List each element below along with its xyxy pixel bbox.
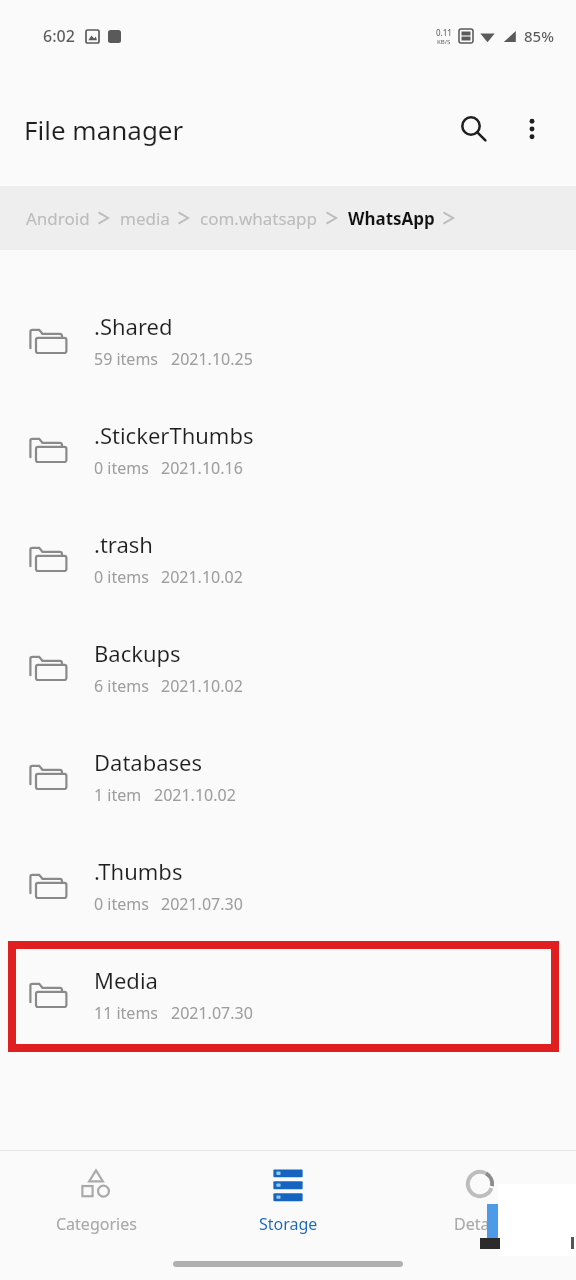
staticText: Media xyxy=(94,965,158,995)
button[interactable]: Details xyxy=(384,1159,576,1243)
button[interactable]: Backups xyxy=(0,613,576,722)
staticText: 0 items xyxy=(94,566,149,588)
button[interactable]: Storage xyxy=(192,1159,384,1243)
staticText: .trash xyxy=(94,529,153,559)
staticText: 59 items xyxy=(94,348,159,370)
button[interactable]: Android xyxy=(24,203,92,234)
staticText: 1 item xyxy=(94,784,142,806)
staticText: com.whatsapp xyxy=(200,207,318,230)
staticText: .Thumbs xyxy=(94,856,183,886)
staticText: 0 items xyxy=(94,457,149,479)
staticText: 0.11 xyxy=(436,27,452,38)
staticText: 2021.10.16 xyxy=(161,457,243,479)
staticText: .StickerThumbs xyxy=(94,420,254,450)
staticText: 2021.10.02 xyxy=(154,784,236,806)
button[interactable]: Media xyxy=(0,940,576,1049)
staticText: 11 items xyxy=(94,1002,159,1024)
staticText: Details xyxy=(454,1213,506,1235)
staticText: Categories xyxy=(56,1213,137,1235)
staticText: 2021.07.30 xyxy=(171,1002,253,1024)
button[interactable]: .Shared xyxy=(0,286,576,395)
staticText: 2021.10.25 xyxy=(171,348,253,370)
button[interactable]: .Thumbs xyxy=(0,831,576,940)
staticText: File manager xyxy=(24,112,184,147)
staticText: Databases xyxy=(94,747,203,777)
staticText: WhatsApp xyxy=(348,207,435,230)
staticText: 6:02 xyxy=(43,25,75,47)
staticText: Backups xyxy=(94,638,181,668)
staticText: Storage xyxy=(259,1213,318,1235)
staticText: .Shared xyxy=(94,311,173,341)
staticText: 2021.10.02 xyxy=(161,675,243,697)
button[interactable]: Categories xyxy=(0,1159,192,1243)
staticText: 2021.07.30 xyxy=(161,893,243,915)
staticText: 0 items xyxy=(94,893,149,915)
staticText: KB/S xyxy=(437,38,451,46)
button[interactable]: com.whatsapp xyxy=(198,203,320,234)
button[interactable]: media xyxy=(118,203,172,234)
staticText: 2021.10.02 xyxy=(161,566,243,588)
staticText: media xyxy=(120,207,170,230)
button[interactable]: More options xyxy=(506,103,558,155)
staticText: 85% xyxy=(524,26,554,46)
staticText: Android xyxy=(26,207,90,230)
button[interactable]: .StickerThumbs xyxy=(0,395,576,504)
button[interactable]: Search xyxy=(448,103,500,155)
button[interactable]: WhatsApp xyxy=(346,203,437,234)
button[interactable]: Databases xyxy=(0,722,576,831)
staticText: 6 items xyxy=(94,675,149,697)
button[interactable]: .trash xyxy=(0,504,576,613)
